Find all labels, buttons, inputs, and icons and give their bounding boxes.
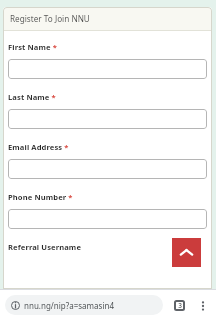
staticText: 3 [178,301,182,310]
button[interactable] [8,59,207,79]
button[interactable] [8,159,207,179]
button[interactable] [8,209,207,229]
staticText: Last Name * [8,92,56,102]
button[interactable]: More options [193,296,212,315]
button[interactable]: nnu.ng/nip?a=samasin4 [5,295,163,315]
staticText: Referral Username [8,242,82,252]
button[interactable]: Switch or open tabs, 3 tabs [170,296,189,315]
staticText: Register To Join NNU [10,13,90,24]
staticText: Email Address * [8,142,69,152]
staticText: Phone Number * [8,192,73,202]
staticText: nnu.ng/nip?a=samasin4 [24,300,114,311]
button[interactable] [8,109,207,129]
button[interactable]: Scroll to top [172,238,201,267]
staticText: First Name * [8,42,57,52]
